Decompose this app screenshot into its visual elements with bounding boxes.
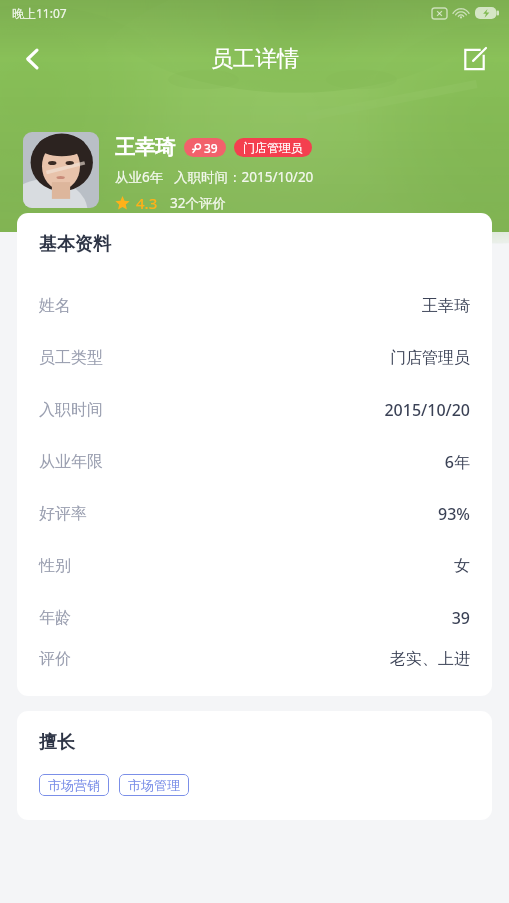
staticText: 姓名	[39, 296, 71, 316]
staticText: 擅长	[39, 731, 75, 754]
staticText: 入职时间	[39, 400, 103, 420]
staticText: 王幸琦	[422, 296, 470, 316]
staticText: 基本资料	[39, 233, 111, 256]
staticText: 年龄	[39, 608, 71, 628]
staticText: 市场营销	[48, 777, 100, 793]
staticText: 入职时间：2015/10/20	[174, 168, 314, 186]
button[interactable]: Edit	[447, 32, 501, 86]
button[interactable]: 好评率	[39, 488, 470, 540]
staticText: 员工详情	[211, 45, 299, 73]
staticText: 评价	[39, 649, 71, 669]
staticText: 2015/10/20	[384, 399, 470, 421]
staticText: 性别	[39, 556, 71, 576]
button[interactable]: 市场管理	[119, 774, 189, 796]
button[interactable]: 性别	[39, 540, 470, 592]
staticText: 员工类型	[39, 348, 103, 368]
staticText: 32个评价	[170, 194, 226, 212]
staticText: 门店管理员	[390, 348, 470, 368]
staticText: 39	[451, 607, 470, 629]
staticText: 王幸琦	[115, 135, 175, 160]
staticText: 从业6年	[115, 168, 164, 186]
staticText: 女	[454, 556, 470, 576]
staticText: 好评率	[39, 504, 87, 524]
button[interactable]: 入职时间	[39, 384, 470, 436]
staticText: 市场管理	[128, 777, 180, 793]
staticText: 老实、上进	[390, 649, 470, 669]
staticText: 4.3	[136, 193, 158, 213]
button[interactable]: 员工类型	[39, 332, 470, 384]
button[interactable]: 从业年限	[39, 436, 470, 488]
staticText: 晚上11:07	[12, 5, 67, 21]
button[interactable]: Avatar	[23, 132, 99, 208]
button[interactable]: 市场营销	[39, 774, 109, 796]
staticText: 从业年限	[39, 452, 103, 472]
staticText: 93%	[438, 503, 470, 525]
button[interactable]: 姓名	[39, 280, 470, 332]
staticText: 39	[204, 140, 218, 156]
button[interactable]: 年龄	[39, 592, 470, 644]
button[interactable]: Back	[6, 32, 60, 86]
button[interactable]: 评价	[39, 644, 470, 674]
staticText: 门店管理员	[243, 140, 303, 155]
staticText: 6年	[444, 451, 470, 473]
